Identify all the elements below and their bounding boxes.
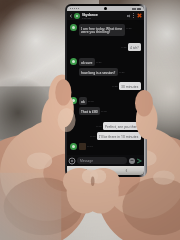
staticText: how long is a session? bbox=[81, 70, 116, 74]
staticText: 2:48 ago bbox=[82, 17, 92, 20]
button[interactable]: 11:12 bbox=[70, 122, 141, 130]
staticText: Skydance bbox=[82, 12, 98, 17]
staticText: 11:10 bbox=[101, 110, 107, 113]
button[interactable]: Mute bbox=[127, 14, 131, 18]
button[interactable]: ok bbox=[70, 97, 141, 105]
button[interactable]: Send bbox=[136, 158, 142, 164]
staticText: ok sure bbox=[81, 60, 93, 64]
staticText: 11:09 bbox=[112, 85, 118, 88]
button[interactable]: 11:09 bbox=[70, 82, 141, 90]
button[interactable]: Add attachment bbox=[69, 158, 75, 164]
staticText: 11:06 bbox=[121, 46, 127, 49]
staticText: 11:07 bbox=[96, 61, 102, 64]
staticText: 11:10 bbox=[88, 100, 94, 103]
button[interactable]: That is £80 bbox=[70, 107, 141, 115]
staticText: ok bbox=[81, 99, 85, 103]
staticText: That is £80 bbox=[81, 109, 98, 113]
staticText: 11:12 bbox=[96, 125, 102, 128]
staticText: 11:12 bbox=[90, 135, 96, 138]
staticText: 11:14 bbox=[87, 145, 93, 148]
button[interactable]: Emoji bbox=[129, 158, 135, 164]
button[interactable]: Back bbox=[124, 168, 129, 173]
button[interactable]: Close bbox=[137, 13, 142, 18]
staticText: Perfect, see you there bbox=[105, 124, 139, 128]
staticText: Message bbox=[80, 159, 93, 163]
button[interactable]: I am free today. What time were you thin… bbox=[70, 24, 141, 36]
button[interactable]: More options bbox=[133, 13, 134, 18]
staticText: 11:02 bbox=[126, 27, 132, 30]
button[interactable]: Home bbox=[103, 168, 108, 173]
button[interactable]: how long is a session? bbox=[70, 68, 141, 76]
button[interactable]: ok sure bbox=[70, 58, 141, 66]
button[interactable]: 11:06 bbox=[70, 43, 141, 51]
staticText: I am free today. What time were you thin… bbox=[81, 26, 123, 34]
button[interactable]: 11:12 bbox=[70, 132, 141, 140]
staticText: 11:07 bbox=[119, 71, 125, 74]
button[interactable]: Message bbox=[77, 157, 127, 164]
staticText: I'll be there in 10 minutes bbox=[99, 134, 139, 138]
staticText: 4 ish? bbox=[130, 45, 139, 49]
button[interactable]: Back bbox=[69, 14, 73, 18]
button[interactable]: 11:14 bbox=[70, 143, 141, 150]
staticText: 30 minutes bbox=[121, 84, 139, 88]
button[interactable]: Recents bbox=[83, 168, 88, 173]
